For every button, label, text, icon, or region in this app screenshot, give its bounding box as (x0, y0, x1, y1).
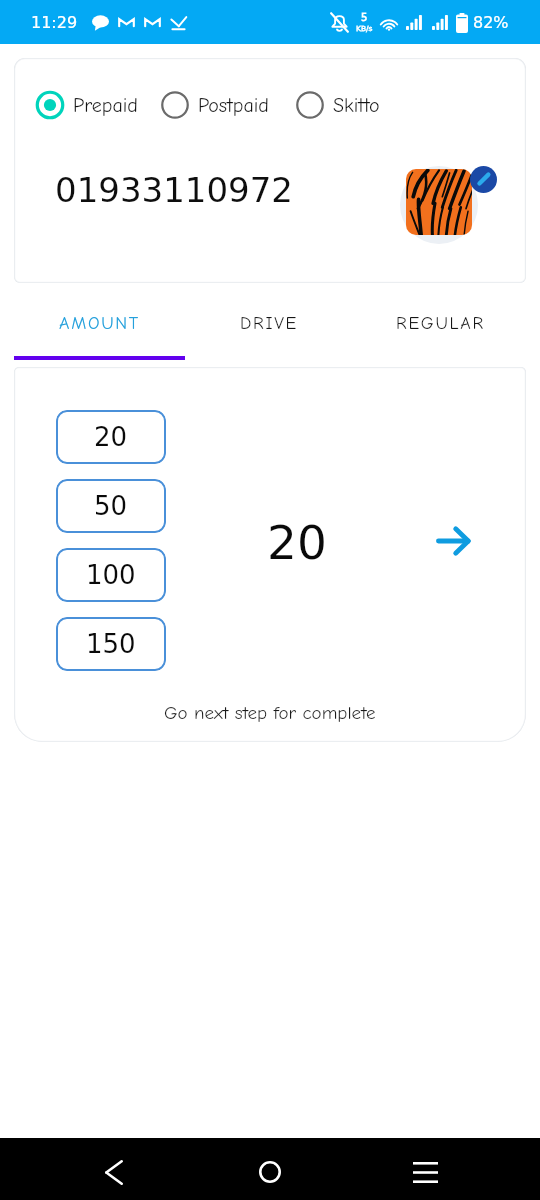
button[interactable]: Edit number (470, 166, 497, 193)
staticText: DRIVE (240, 313, 299, 334)
staticText: Prepaid (73, 94, 138, 117)
button[interactable]: AMOUNT (14, 313, 184, 334)
staticText: 100 (86, 560, 136, 590)
button[interactable]: DRIVE (184, 313, 355, 334)
staticText: Go next step for complete (164, 702, 376, 724)
staticText: Postpaid (198, 94, 269, 117)
staticText: Skitto (333, 94, 380, 117)
staticText: REGULAR (396, 313, 485, 334)
button[interactable]: Postpaid (161, 88, 269, 122)
staticText: 20 (94, 422, 128, 452)
button[interactable]: REGULAR (355, 313, 526, 334)
staticText: 20 (267, 515, 327, 570)
button[interactable]: Recent apps (401, 1148, 449, 1196)
button[interactable]: 20 (56, 410, 166, 464)
staticText: 01933110972 (55, 170, 293, 210)
staticText: AMOUNT (59, 313, 140, 334)
button[interactable]: Back (90, 1148, 138, 1196)
button[interactable]: Next (433, 520, 475, 562)
staticText: 150 (86, 629, 136, 659)
staticText: 11:29 (31, 13, 78, 32)
button[interactable]: Skitto (296, 88, 380, 122)
button[interactable]: 100 (56, 548, 166, 602)
button[interactable]: 150 (56, 617, 166, 671)
button[interactable]: Prepaid (36, 88, 138, 122)
staticText: 50 (94, 491, 128, 521)
staticText: 82% (473, 13, 509, 32)
button[interactable]: Home (246, 1148, 294, 1196)
button[interactable]: 50 (56, 479, 166, 533)
staticText: 5 (361, 12, 368, 24)
staticText: KB/s (356, 24, 373, 33)
